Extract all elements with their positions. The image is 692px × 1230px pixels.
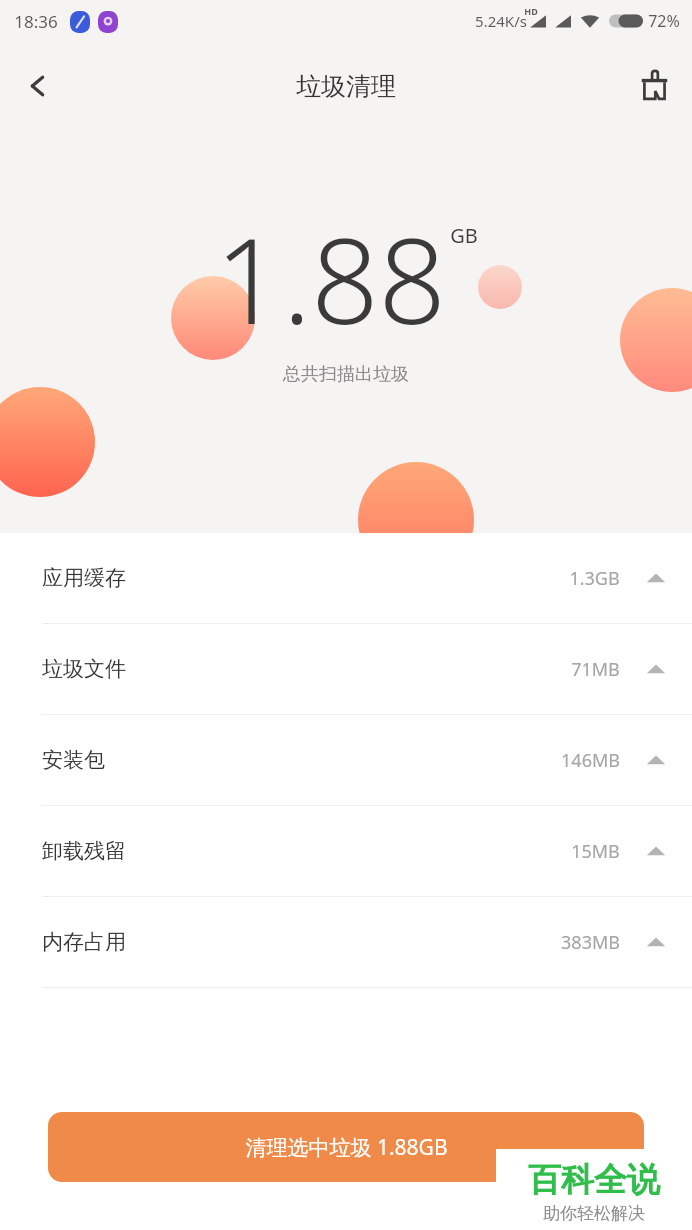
staticText: GB bbox=[450, 222, 478, 249]
button[interactable]: 卸载残留 bbox=[0, 806, 692, 896]
staticText: 18:36 bbox=[14, 10, 58, 33]
button[interactable]: 安装包 bbox=[0, 715, 692, 805]
button[interactable]: Back bbox=[10, 58, 66, 114]
staticText: 383MB bbox=[561, 930, 620, 955]
staticText: 内存占用 bbox=[42, 929, 126, 955]
staticText: 146MB bbox=[561, 748, 620, 773]
staticText: 应用缓存 bbox=[42, 565, 126, 591]
staticText: HD bbox=[524, 5, 538, 17]
staticText: 安装包 bbox=[42, 747, 105, 773]
button[interactable]: 应用缓存 bbox=[0, 533, 692, 623]
staticText: 清理选中垃圾 1.88GB bbox=[245, 1133, 448, 1162]
button[interactable]: 清理选中垃圾 1.88GB bbox=[48, 1112, 644, 1182]
staticText: 72% bbox=[648, 10, 680, 32]
staticText: 垃圾文件 bbox=[42, 656, 126, 682]
button[interactable]: 内存占用 bbox=[0, 897, 692, 987]
staticText: 1.88 bbox=[215, 198, 446, 359]
staticText: 卸载残留 bbox=[42, 838, 126, 864]
staticText: 助你轻松解决 bbox=[543, 1203, 645, 1224]
staticText: 5.24K/s bbox=[475, 11, 527, 31]
button[interactable]: Clean bbox=[626, 58, 682, 114]
staticText: 垃圾清理 bbox=[296, 71, 396, 102]
staticText: 总共扫描出垃圾 bbox=[283, 363, 409, 386]
staticText: 15MB bbox=[571, 839, 620, 864]
staticText: 71MB bbox=[571, 657, 620, 682]
staticText: 1.3GB bbox=[569, 566, 620, 591]
staticText: 百科全说 bbox=[528, 1159, 660, 1201]
button[interactable]: 垃圾文件 bbox=[0, 624, 692, 714]
